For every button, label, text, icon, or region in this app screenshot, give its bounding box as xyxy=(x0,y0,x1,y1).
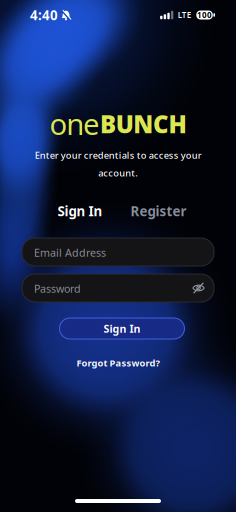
button[interactable]: Register xyxy=(130,202,186,220)
button[interactable]: Sign In xyxy=(57,202,102,220)
staticText: 100 xyxy=(197,10,212,20)
staticText: one xyxy=(49,104,100,143)
staticText: Register xyxy=(130,202,186,220)
staticText: Password xyxy=(34,281,81,296)
staticText: 4:40 xyxy=(30,6,58,24)
button[interactable]: Email Address xyxy=(22,238,214,266)
button[interactable]: Sign In xyxy=(59,318,184,339)
staticText: Sign In xyxy=(103,321,140,336)
staticText: Enter your credentials to access your ac… xyxy=(34,149,201,179)
staticText: LTE xyxy=(178,10,191,20)
staticText: BUNCH xyxy=(100,108,186,140)
staticText: Forgot Password? xyxy=(76,357,159,369)
button[interactable]: Forgot Password? xyxy=(76,357,159,369)
button[interactable]: Password xyxy=(22,274,214,302)
staticText: Sign In xyxy=(57,202,102,220)
staticText: Email Address xyxy=(34,245,106,260)
